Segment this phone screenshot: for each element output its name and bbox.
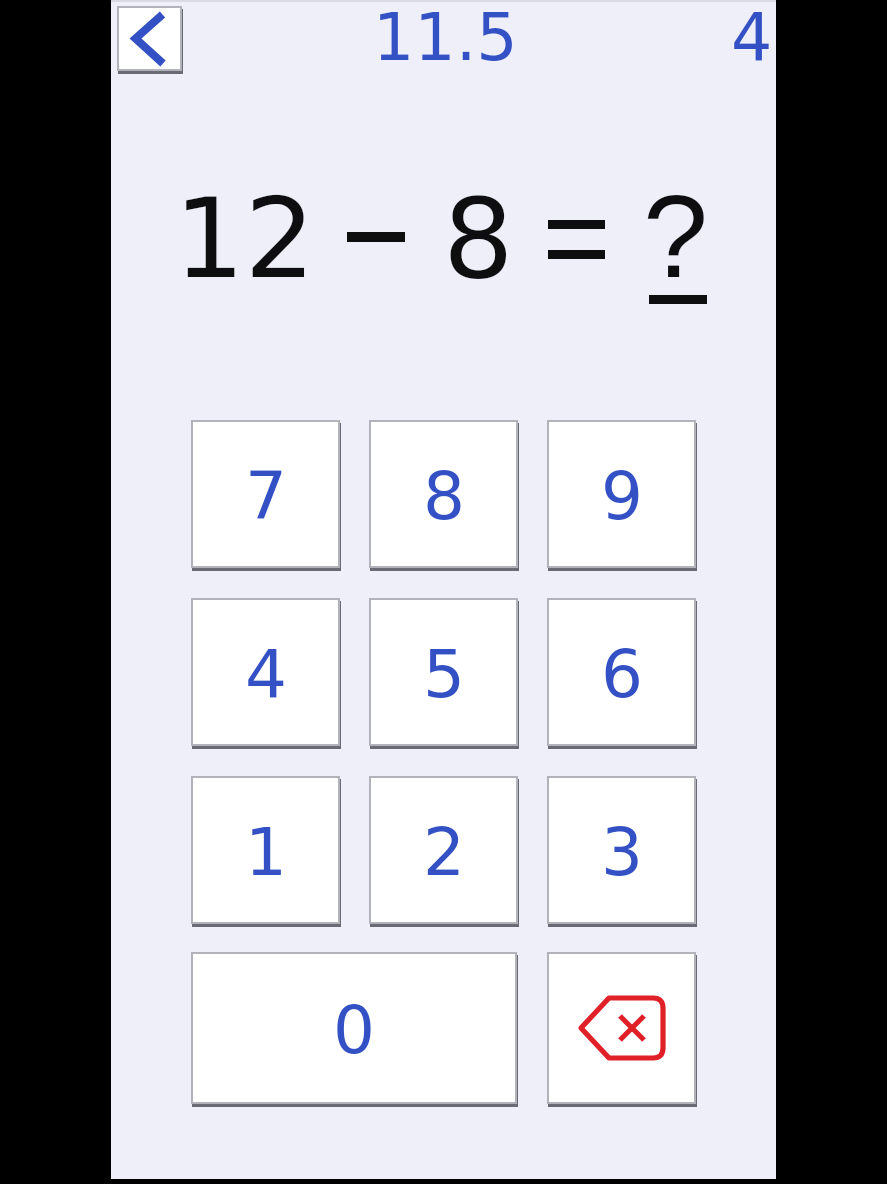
staticText: 12 (174, 174, 316, 303)
button[interactable]: 0 (191, 952, 517, 1104)
button[interactable]: 2 (369, 776, 518, 924)
staticText: 8 (443, 174, 514, 303)
staticText: 4 (245, 636, 287, 713)
staticText: 9 (601, 458, 643, 535)
button[interactable]: 9 (547, 420, 696, 568)
button[interactable]: 7 (191, 420, 340, 568)
button[interactable]: 3 (547, 776, 696, 924)
staticText: 1 (245, 814, 287, 891)
button[interactable]: 5 (369, 598, 518, 746)
staticText: 3 (601, 814, 643, 891)
staticText: 2 (423, 814, 465, 891)
staticText: 0 (333, 992, 375, 1069)
staticText: 11.5 (373, 0, 518, 76)
button[interactable] (547, 952, 696, 1104)
button[interactable]: 4 (191, 598, 340, 746)
button[interactable]: 1 (191, 776, 340, 924)
button[interactable]: 8 (369, 420, 518, 568)
staticText: 6 (601, 636, 643, 713)
button[interactable] (117, 6, 182, 71)
staticText: 7 (245, 458, 287, 535)
button[interactable]: 6 (547, 598, 696, 746)
staticText: ? (643, 171, 709, 302)
staticText: 5 (423, 636, 465, 713)
staticText: 4 (731, 0, 773, 76)
staticText: 8 (423, 458, 465, 535)
